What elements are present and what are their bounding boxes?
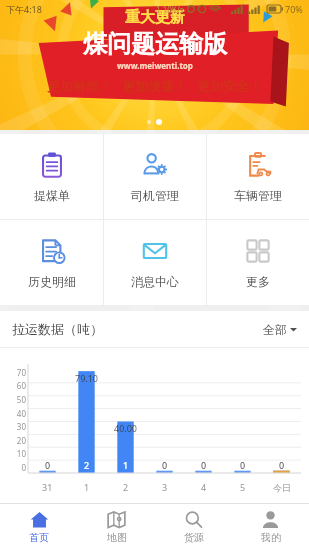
staticText: www.meiwenti.top [117, 60, 193, 71]
staticText: 车辆管理 [234, 188, 282, 203]
staticText: 31 [42, 481, 53, 493]
staticText: 提煤单 [34, 188, 70, 203]
staticText: 更加智能！ [47, 78, 112, 94]
staticText: 4 [201, 481, 207, 493]
staticText: 0 [201, 459, 207, 471]
staticText: 首页 [29, 531, 49, 544]
staticText: 79.10 [75, 372, 99, 384]
staticText: 0 [45, 459, 51, 471]
staticText: 1 [84, 481, 90, 493]
staticText: 2 [123, 481, 129, 493]
staticText: 下午4:18 [6, 3, 42, 15]
button[interactable]: 车辆管理 [207, 134, 309, 219]
staticText: 70% [285, 3, 303, 15]
button[interactable]: 首页 [0, 504, 78, 550]
staticText: 2 [84, 459, 90, 471]
staticText: 消息中心 [131, 274, 179, 289]
button[interactable]: 货源 [155, 504, 232, 550]
staticText: 5 [240, 481, 246, 493]
staticText: 司机管理 [131, 188, 179, 203]
staticText: 今日 [273, 482, 291, 493]
staticText: 地图 [107, 531, 127, 544]
staticText: 0 [279, 459, 285, 471]
staticText: 30 [16, 421, 26, 432]
staticText: 1.10K/s [156, 4, 184, 15]
button[interactable]: 司机管理 [104, 134, 206, 219]
button[interactable]: 更多 [207, 220, 309, 305]
button[interactable]: 历史明细 [0, 220, 103, 305]
staticText: 更加安全！ [197, 78, 262, 94]
staticText: 货源 [184, 531, 204, 544]
staticText: 拉运数据（吨） [12, 321, 103, 337]
button[interactable]: 提煤单 [0, 134, 103, 219]
button[interactable]: 地图 [78, 504, 155, 550]
staticText: 70 [16, 367, 26, 378]
button[interactable]: 消息中心 [104, 220, 206, 305]
button[interactable]: Promotion banner [0, 0, 309, 130]
staticText: 0 [240, 459, 246, 471]
staticText: 1 [123, 459, 129, 471]
staticText: 我的 [261, 531, 281, 544]
staticText: 历史明细 [28, 274, 76, 289]
staticText: 50 [16, 394, 26, 405]
staticText: 10 [16, 448, 26, 459]
staticText: 3 [162, 481, 168, 493]
staticText: 0 [162, 459, 168, 471]
staticText: 0 [21, 462, 26, 473]
staticText: 煤问题运输版 [83, 29, 227, 59]
staticText: 40 [16, 408, 26, 419]
staticText: 重大更新 [125, 8, 185, 27]
staticText: 40.00 [114, 422, 138, 434]
staticText: 20 [16, 435, 26, 446]
staticText: 更多 [246, 274, 270, 289]
staticText: 60 [16, 380, 26, 391]
button[interactable]: 全部 [263, 322, 297, 337]
staticText: 全部 [263, 322, 287, 337]
staticText: 更加便捷！ [122, 78, 187, 94]
button[interactable]: 我的 [232, 504, 309, 550]
